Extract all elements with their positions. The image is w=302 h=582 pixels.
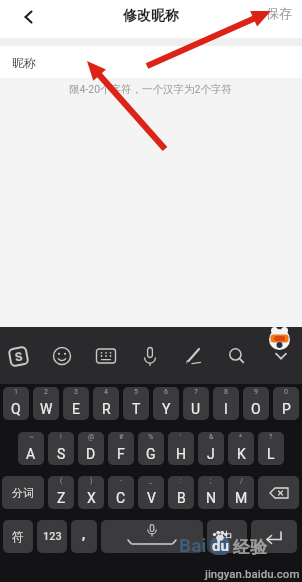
staticText: ~ bbox=[29, 433, 34, 441]
staticText: ! bbox=[60, 433, 62, 441]
staticText: Bai bbox=[179, 534, 207, 556]
button[interactable]: 6 bbox=[153, 387, 179, 420]
button[interactable] bbox=[251, 520, 297, 553]
button[interactable]: @ bbox=[78, 432, 104, 465]
staticText: ) bbox=[90, 477, 93, 485]
button[interactable]: ; bbox=[198, 476, 224, 509]
staticText: @ bbox=[88, 433, 95, 441]
button[interactable]: & bbox=[198, 432, 224, 465]
button[interactable]: ? bbox=[258, 432, 284, 465]
staticText: 123 bbox=[43, 530, 62, 543]
staticText: - bbox=[120, 477, 122, 485]
button[interactable]: _ bbox=[138, 476, 164, 509]
button[interactable]: 保存 bbox=[266, 0, 302, 21]
button[interactable]: 1 bbox=[3, 387, 29, 420]
staticText: U bbox=[191, 401, 201, 417]
staticText: L bbox=[267, 446, 275, 462]
staticText: ? bbox=[269, 433, 273, 441]
button[interactable]: ! bbox=[48, 432, 74, 465]
staticText: _ bbox=[149, 477, 153, 485]
button[interactable] bbox=[222, 341, 252, 371]
staticText: 限4-20个字符，一个汉字为2个字符 bbox=[69, 83, 233, 96]
staticText: I bbox=[224, 401, 228, 417]
staticText: , bbox=[82, 526, 86, 542]
staticText: S bbox=[57, 446, 66, 462]
staticText: H bbox=[176, 446, 186, 462]
button[interactable]: 符 bbox=[3, 520, 33, 553]
staticText: jingyan.baidu.com bbox=[205, 567, 300, 580]
staticText: du bbox=[212, 537, 229, 555]
staticText: C bbox=[116, 490, 126, 506]
staticText: X bbox=[87, 490, 96, 506]
staticText: 修改昵称 bbox=[123, 7, 179, 25]
staticText: R bbox=[102, 401, 111, 417]
button[interactable]: 分词 bbox=[2, 476, 44, 509]
staticText: 符 bbox=[12, 529, 24, 544]
staticText: & bbox=[209, 433, 214, 441]
staticText: 经验 bbox=[233, 537, 267, 558]
button[interactable]: : bbox=[168, 476, 194, 509]
button[interactable] bbox=[135, 341, 165, 371]
staticText: N bbox=[206, 490, 216, 506]
button[interactable]: 0 bbox=[273, 387, 299, 420]
button[interactable]: 123 bbox=[37, 520, 67, 553]
staticText: E bbox=[72, 401, 80, 417]
staticText: G bbox=[146, 446, 156, 462]
staticText: 5 bbox=[134, 388, 138, 396]
button[interactable]: 7 bbox=[183, 387, 209, 420]
button[interactable] bbox=[178, 341, 208, 371]
staticText: D bbox=[86, 446, 96, 462]
staticText: 中 bbox=[221, 529, 233, 544]
staticText: : bbox=[180, 477, 182, 485]
button[interactable] bbox=[47, 341, 77, 371]
staticText: ; bbox=[210, 477, 212, 485]
staticText: K bbox=[237, 446, 246, 462]
button[interactable]: 中 bbox=[207, 520, 247, 553]
staticText: 9 bbox=[254, 388, 258, 396]
staticText: * bbox=[239, 433, 243, 441]
staticText: 昵称 bbox=[12, 55, 36, 70]
button[interactable]: ) bbox=[78, 476, 104, 509]
button[interactable] bbox=[266, 341, 296, 371]
staticText: Z bbox=[57, 490, 66, 506]
staticText: J bbox=[207, 446, 215, 462]
staticText: / bbox=[240, 477, 243, 485]
button[interactable]: ~ bbox=[18, 432, 44, 465]
button[interactable]: - bbox=[108, 476, 134, 509]
staticText: 6 bbox=[164, 388, 168, 396]
button[interactable]: ' bbox=[168, 432, 194, 465]
button[interactable]: * bbox=[228, 432, 254, 465]
button[interactable] bbox=[258, 476, 299, 509]
button[interactable]: S bbox=[3, 341, 33, 371]
staticText: 1 bbox=[14, 388, 18, 396]
button[interactable]: , bbox=[71, 520, 97, 553]
staticText: M bbox=[235, 490, 248, 506]
button[interactable]: 9 bbox=[243, 387, 269, 420]
button[interactable]: % bbox=[138, 432, 164, 465]
button[interactable]: 昵称 bbox=[0, 46, 302, 78]
staticText: S bbox=[14, 349, 24, 364]
staticText: 3 bbox=[74, 388, 78, 396]
staticText: 2 bbox=[44, 388, 48, 396]
button[interactable]: ( bbox=[48, 476, 74, 509]
staticText: ( bbox=[60, 477, 63, 485]
button[interactable]: 5 bbox=[123, 387, 149, 420]
staticText: 7 bbox=[194, 388, 198, 396]
button[interactable] bbox=[16, 7, 40, 31]
staticText: % bbox=[148, 433, 154, 441]
staticText: W bbox=[40, 401, 53, 417]
button[interactable]: 2 bbox=[33, 387, 59, 420]
staticText: F bbox=[117, 446, 125, 462]
button[interactable]: 8 bbox=[213, 387, 239, 420]
button[interactable]: # bbox=[108, 432, 134, 465]
button[interactable] bbox=[91, 341, 121, 371]
staticText: O bbox=[251, 401, 261, 417]
button[interactable] bbox=[101, 520, 203, 553]
staticText: ' bbox=[180, 433, 182, 441]
button[interactable]: 3 bbox=[63, 387, 89, 420]
button[interactable]: / bbox=[228, 476, 254, 509]
staticText: 4 bbox=[104, 388, 108, 396]
staticText: P bbox=[282, 401, 291, 417]
button[interactable]: 4 bbox=[93, 387, 119, 420]
staticText: 保存 bbox=[266, 5, 292, 21]
